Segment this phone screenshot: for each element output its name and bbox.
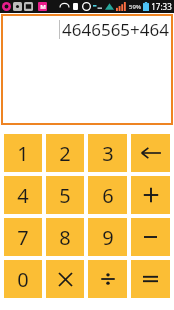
staticText: 5 xyxy=(59,182,71,209)
button[interactable]: 4 xyxy=(4,176,42,214)
staticText: 8 xyxy=(59,224,71,251)
staticText: 0 xyxy=(17,266,29,293)
button[interactable]: 4646565+464 xyxy=(1,14,173,125)
staticText: 7 xyxy=(17,224,29,251)
button[interactable]: 1 xyxy=(4,134,42,172)
button[interactable]: Multiply xyxy=(46,260,84,298)
staticText: 4 xyxy=(17,182,29,209)
staticText: 17:33 xyxy=(151,1,172,12)
button[interactable]: Backspace xyxy=(131,134,170,172)
button[interactable]: Equals xyxy=(131,260,170,298)
staticText: 3 xyxy=(102,140,114,167)
button[interactable]: 7 xyxy=(4,218,42,256)
button[interactable]: 2 xyxy=(46,134,84,172)
button[interactable]: 5 xyxy=(46,176,84,214)
button[interactable]: Divide xyxy=(88,260,127,298)
staticText: 4646565+464 xyxy=(62,18,169,41)
staticText: 2 xyxy=(59,140,71,167)
button[interactable]: Minus xyxy=(131,218,170,256)
staticText: 6 xyxy=(102,182,114,209)
button[interactable]: 9 xyxy=(88,218,127,256)
button[interactable]: 3 xyxy=(88,134,127,172)
button[interactable]: Plus xyxy=(131,176,170,214)
button[interactable]: 0 xyxy=(4,260,42,298)
staticText: 9 xyxy=(102,224,114,251)
staticText: 59% xyxy=(129,3,141,11)
button[interactable]: 6 xyxy=(88,176,127,214)
staticText: 1 xyxy=(17,140,29,167)
staticText: M xyxy=(40,3,46,11)
button[interactable]: 8 xyxy=(46,218,84,256)
